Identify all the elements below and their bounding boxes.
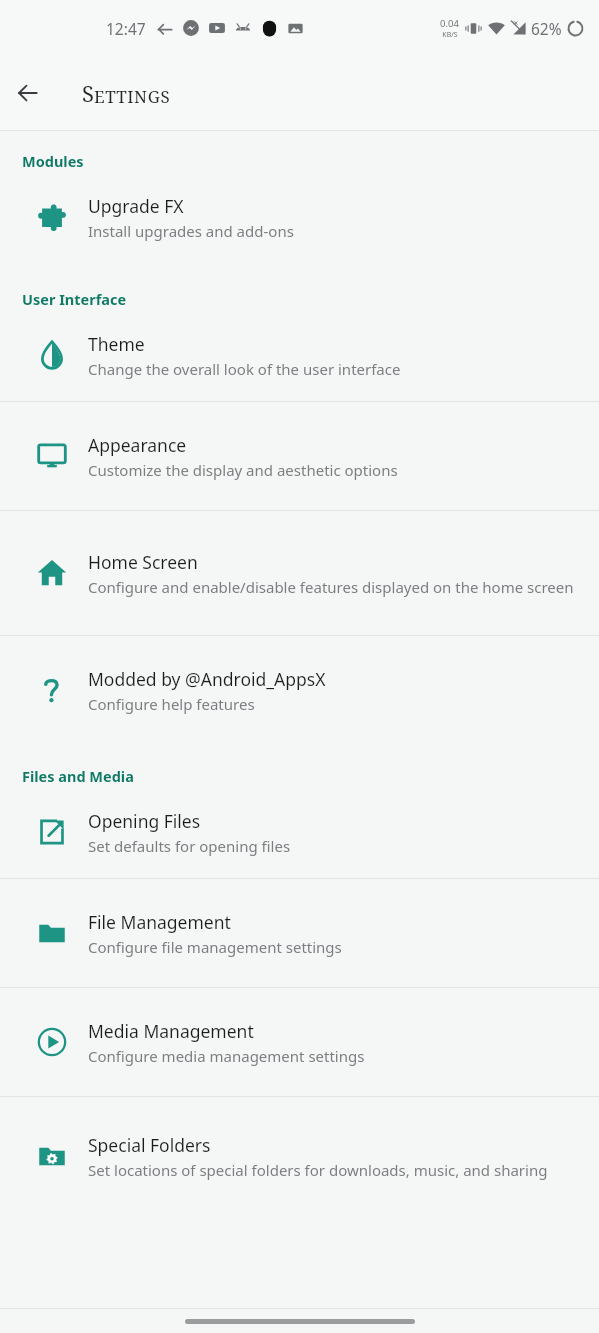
staticText: Home Screen bbox=[88, 550, 198, 574]
staticText: Change the overall look of the user inte… bbox=[88, 359, 401, 379]
other: Special Folders bbox=[35, 1139, 69, 1173]
staticText: Theme bbox=[88, 332, 145, 356]
button[interactable]: Theme bbox=[0, 309, 599, 401]
staticText: 62% bbox=[531, 18, 562, 39]
staticText: Set defaults for opening files bbox=[88, 836, 291, 856]
staticText: Appearance bbox=[88, 433, 187, 457]
staticText: S bbox=[82, 78, 94, 108]
other: Appearance bbox=[35, 439, 69, 473]
staticText: Set locations of special folders for dow… bbox=[88, 1160, 548, 1180]
other: Help bbox=[35, 673, 69, 707]
other: Media Management bbox=[35, 1025, 69, 1059]
button[interactable]: Upgrade FX bbox=[0, 171, 599, 263]
staticText: Modules bbox=[22, 151, 84, 171]
staticText: Configure help features bbox=[88, 694, 255, 714]
staticText: Customize the display and aesthetic opti… bbox=[88, 460, 398, 480]
staticText: Install upgrades and add-ons bbox=[88, 221, 294, 241]
staticText: Configure and enable/disable features di… bbox=[88, 577, 574, 597]
other: File Management bbox=[35, 916, 69, 950]
button[interactable]: Help bbox=[0, 636, 599, 744]
staticText: Files and Media bbox=[22, 766, 134, 786]
staticText: KB/S bbox=[442, 30, 458, 40]
staticText: Configure file management settings bbox=[88, 937, 342, 957]
staticText: Configure media management settings bbox=[88, 1046, 365, 1066]
staticText: 0.04 bbox=[440, 17, 459, 30]
staticText: Opening Files bbox=[88, 809, 201, 833]
staticText: Upgrade FX bbox=[88, 194, 184, 218]
other: Theme bbox=[35, 338, 69, 372]
other: Upgrade FX bbox=[35, 200, 69, 234]
staticText: User Interface bbox=[22, 289, 127, 309]
staticText: Special Folders bbox=[88, 1133, 211, 1157]
button[interactable]: Media Management bbox=[0, 988, 599, 1096]
button[interactable]: Appearance bbox=[0, 402, 599, 510]
button[interactable]: Opening Files bbox=[0, 786, 599, 878]
staticText: ETTINGS bbox=[94, 85, 171, 108]
staticText: Modded by @Android_AppsX bbox=[88, 667, 326, 691]
other: Opening Files bbox=[35, 815, 69, 849]
button[interactable]: Back bbox=[0, 65, 56, 121]
button[interactable]: File Management bbox=[0, 879, 599, 987]
button[interactable]: Home Screen bbox=[0, 511, 599, 635]
staticText: Media Management bbox=[88, 1019, 254, 1043]
other: Home Screen bbox=[35, 556, 69, 590]
staticText: File Management bbox=[88, 910, 231, 934]
staticText: 12:47 bbox=[106, 18, 146, 39]
button[interactable]: Special Folders bbox=[0, 1097, 599, 1215]
